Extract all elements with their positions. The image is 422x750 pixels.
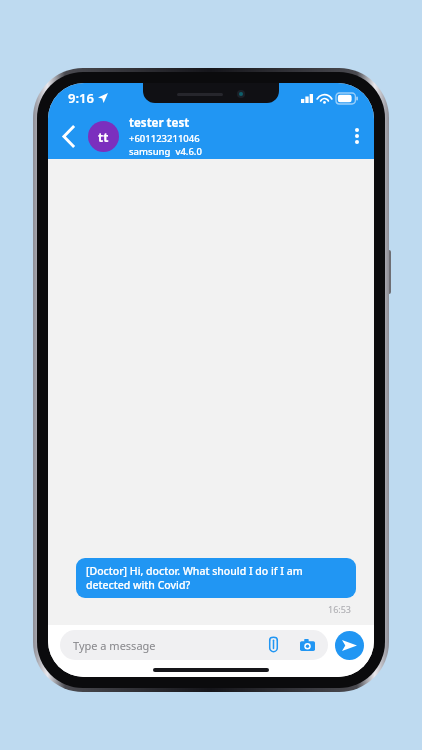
staticText: samsung v4.6.0 — [129, 145, 202, 158]
button[interactable]: Attach file — [262, 634, 284, 656]
staticText: tester test — [129, 115, 190, 131]
button[interactable]: tt — [88, 121, 119, 152]
staticText: 9:16 — [68, 89, 94, 107]
staticText: Type a message — [73, 638, 156, 653]
staticText: [Doctor] Hi, doctor. What should I do if… — [86, 564, 346, 592]
button[interactable]: Send — [335, 631, 364, 660]
staticText: tt — [98, 129, 109, 145]
button[interactable]: More options — [340, 113, 374, 159]
button[interactable]: [Doctor] Hi, doctor. What should I do if… — [76, 558, 356, 598]
button[interactable]: Type a message — [60, 630, 328, 660]
staticText: +601123211046 — [129, 132, 200, 145]
button[interactable]: Camera — [296, 634, 318, 656]
staticText: 16:53 — [328, 603, 352, 615]
button[interactable]: Back — [48, 113, 88, 159]
